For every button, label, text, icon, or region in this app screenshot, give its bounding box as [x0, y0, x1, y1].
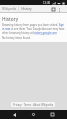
staticText: Wikipedia | History — [2, 7, 32, 11]
staticText: 12:30 — [43, 1, 51, 5]
button[interactable]: Back — [10, 110, 19, 119]
button[interactable]: Wikipedia | History — [2, 7, 32, 11]
button[interactable]: More options — [57, 7, 62, 12]
staticText: No history items found. — [2, 36, 31, 40]
staticText: History — [2, 16, 19, 23]
button[interactable]: Privacy · Terms · About Wikipedia — [11, 102, 55, 107]
staticText: Browsing history from pages you have vis… — [2, 23, 65, 35]
button[interactable]: Home — [29, 110, 38, 119]
staticText: Privacy · Terms · About Wikipedia — [13, 103, 54, 107]
button[interactable]: Recent apps — [48, 110, 57, 119]
button[interactable]: Tabs — [51, 7, 56, 12]
